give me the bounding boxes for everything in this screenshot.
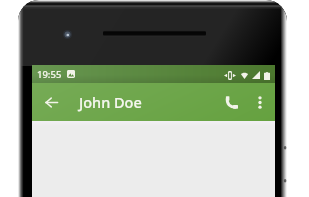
- button[interactable]: Back: [39, 90, 63, 114]
- staticText: 19:55: [37, 68, 62, 81]
- button[interactable]: Call: [219, 90, 243, 114]
- button[interactable]: More options: [249, 91, 271, 113]
- staticText: John Doe: [79, 92, 142, 112]
